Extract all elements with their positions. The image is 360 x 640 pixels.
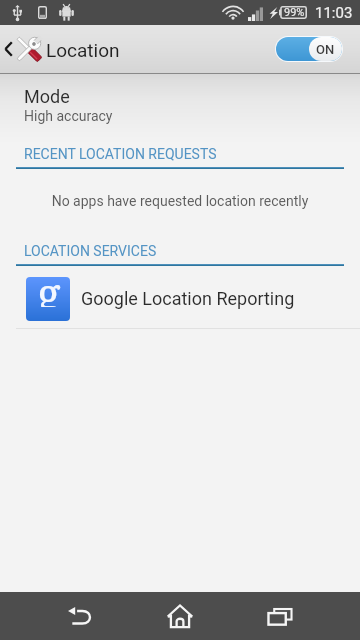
staticText: Mode [24,86,70,107]
staticText: g [37,263,61,307]
staticText: Location [46,39,120,61]
staticText: 99% [284,6,305,19]
button[interactable]: Recent apps [240,592,360,640]
button[interactable]: Location on off switch [275,36,343,62]
button[interactable]: Mode [0,74,360,144]
staticText: ON [316,42,335,57]
button[interactable]: Back [0,592,120,640]
staticText: RECENT LOCATION REQUESTS [24,146,217,162]
button[interactable]: g [0,271,360,331]
button[interactable]: Home [120,592,240,640]
staticText: 11:03 [315,4,353,22]
staticText: LOCATION SERVICES [24,243,157,259]
staticText: Google Location Reporting [81,288,295,309]
button[interactable]: Location [0,25,132,73]
staticText: High accuracy [24,108,113,124]
staticText: No apps have requested location recently [0,193,360,209]
